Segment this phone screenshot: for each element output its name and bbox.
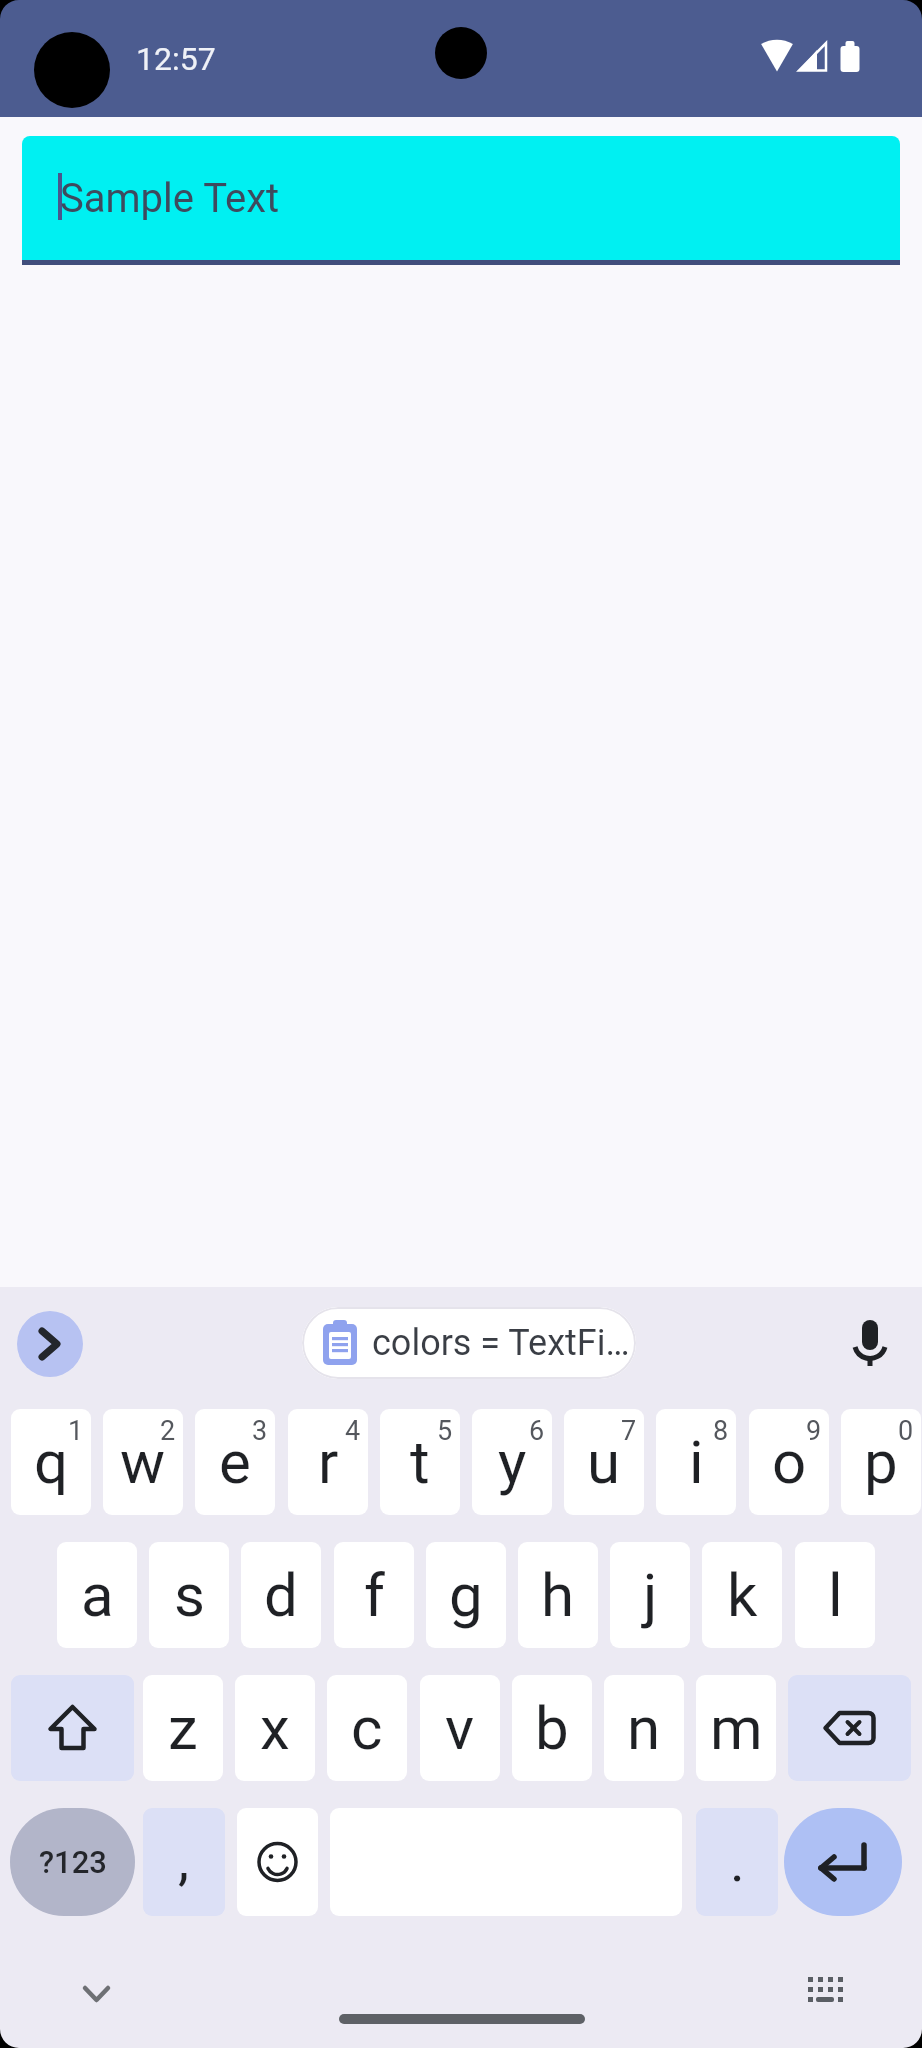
staticText: u <box>587 1427 621 1497</box>
staticText: q <box>34 1427 69 1497</box>
button[interactable]: i <box>656 1409 736 1515</box>
button[interactable]: ?123 <box>10 1808 135 1916</box>
staticText: x <box>260 1693 290 1763</box>
button[interactable]: j <box>610 1542 690 1648</box>
button[interactable] <box>788 1675 911 1781</box>
button[interactable]: l <box>795 1542 875 1648</box>
button[interactable]: z <box>143 1675 223 1781</box>
staticText: 4 <box>345 1415 361 1447</box>
staticText: g <box>449 1560 483 1630</box>
staticText: d <box>264 1560 298 1630</box>
button[interactable] <box>237 1808 318 1916</box>
staticText: n <box>627 1693 661 1763</box>
staticText: c <box>351 1693 383 1763</box>
staticText: 8 <box>713 1415 729 1447</box>
staticText: y <box>498 1427 527 1497</box>
button[interactable]: u <box>564 1409 644 1515</box>
staticText: colors = TextFi… <box>372 1322 630 1364</box>
button[interactable] <box>17 1311 83 1377</box>
staticText: f <box>364 1560 385 1630</box>
staticText: ?123 <box>39 1844 107 1880</box>
staticText: r <box>318 1427 339 1497</box>
staticText: t <box>410 1427 430 1497</box>
staticText: p <box>864 1427 898 1497</box>
button[interactable]: t <box>380 1409 460 1515</box>
button[interactable]: n <box>604 1675 684 1781</box>
button[interactable]: a <box>57 1542 137 1648</box>
button[interactable]: g <box>426 1542 506 1648</box>
button[interactable]: c <box>327 1675 407 1781</box>
staticText: a <box>81 1560 114 1630</box>
button[interactable]: f <box>334 1542 414 1648</box>
button[interactable]: b <box>512 1675 592 1781</box>
button[interactable]: p <box>841 1409 921 1515</box>
staticText: h <box>541 1560 575 1630</box>
button[interactable]: y <box>472 1409 552 1515</box>
staticText: 6 <box>529 1415 545 1447</box>
button[interactable]: x <box>235 1675 315 1781</box>
staticText: e <box>219 1427 251 1497</box>
staticText: w <box>120 1427 166 1497</box>
staticText: 5 <box>437 1415 453 1447</box>
button[interactable]: , <box>143 1808 225 1916</box>
staticText: 3 <box>252 1415 268 1447</box>
button[interactable] <box>68 1975 124 2015</box>
button[interactable]: w <box>103 1409 183 1515</box>
staticText: z <box>168 1693 198 1763</box>
staticText: s <box>174 1560 205 1630</box>
button[interactable] <box>784 1808 902 1916</box>
staticText: b <box>535 1693 569 1763</box>
button[interactable]: k <box>702 1542 782 1648</box>
staticText: 7 <box>621 1415 637 1447</box>
button[interactable]: v <box>420 1675 500 1781</box>
staticText: Sample Text <box>60 175 280 222</box>
staticText: 1 <box>68 1415 84 1447</box>
staticText: . <box>730 1829 745 1895</box>
staticText: k <box>727 1560 758 1630</box>
button[interactable] <box>339 2014 585 2024</box>
button[interactable] <box>800 1970 850 2014</box>
staticText: 0 <box>898 1415 914 1447</box>
staticText: m <box>710 1693 763 1763</box>
button[interactable]: colors = TextFi… <box>302 1307 636 1379</box>
button[interactable]: Sample Text <box>22 136 900 260</box>
button[interactable]: s <box>149 1542 229 1648</box>
button[interactable]: q <box>11 1409 91 1515</box>
staticText: , <box>178 1827 190 1893</box>
button[interactable]: r <box>288 1409 368 1515</box>
button[interactable]: . <box>696 1808 778 1916</box>
staticText: 12:57 <box>136 40 216 78</box>
staticText: v <box>445 1693 475 1763</box>
staticText: j <box>643 1560 658 1630</box>
staticText: 2 <box>160 1415 176 1447</box>
button[interactable]: d <box>241 1542 321 1648</box>
button[interactable] <box>11 1675 134 1781</box>
staticText: o <box>772 1427 807 1497</box>
button[interactable] <box>840 1312 900 1376</box>
staticText: 9 <box>806 1415 822 1447</box>
staticText: l <box>828 1560 843 1630</box>
staticText: i <box>689 1427 704 1497</box>
button[interactable]: o <box>749 1409 829 1515</box>
button[interactable]: h <box>518 1542 598 1648</box>
button[interactable]: m <box>696 1675 776 1781</box>
button[interactable]: e <box>195 1409 275 1515</box>
